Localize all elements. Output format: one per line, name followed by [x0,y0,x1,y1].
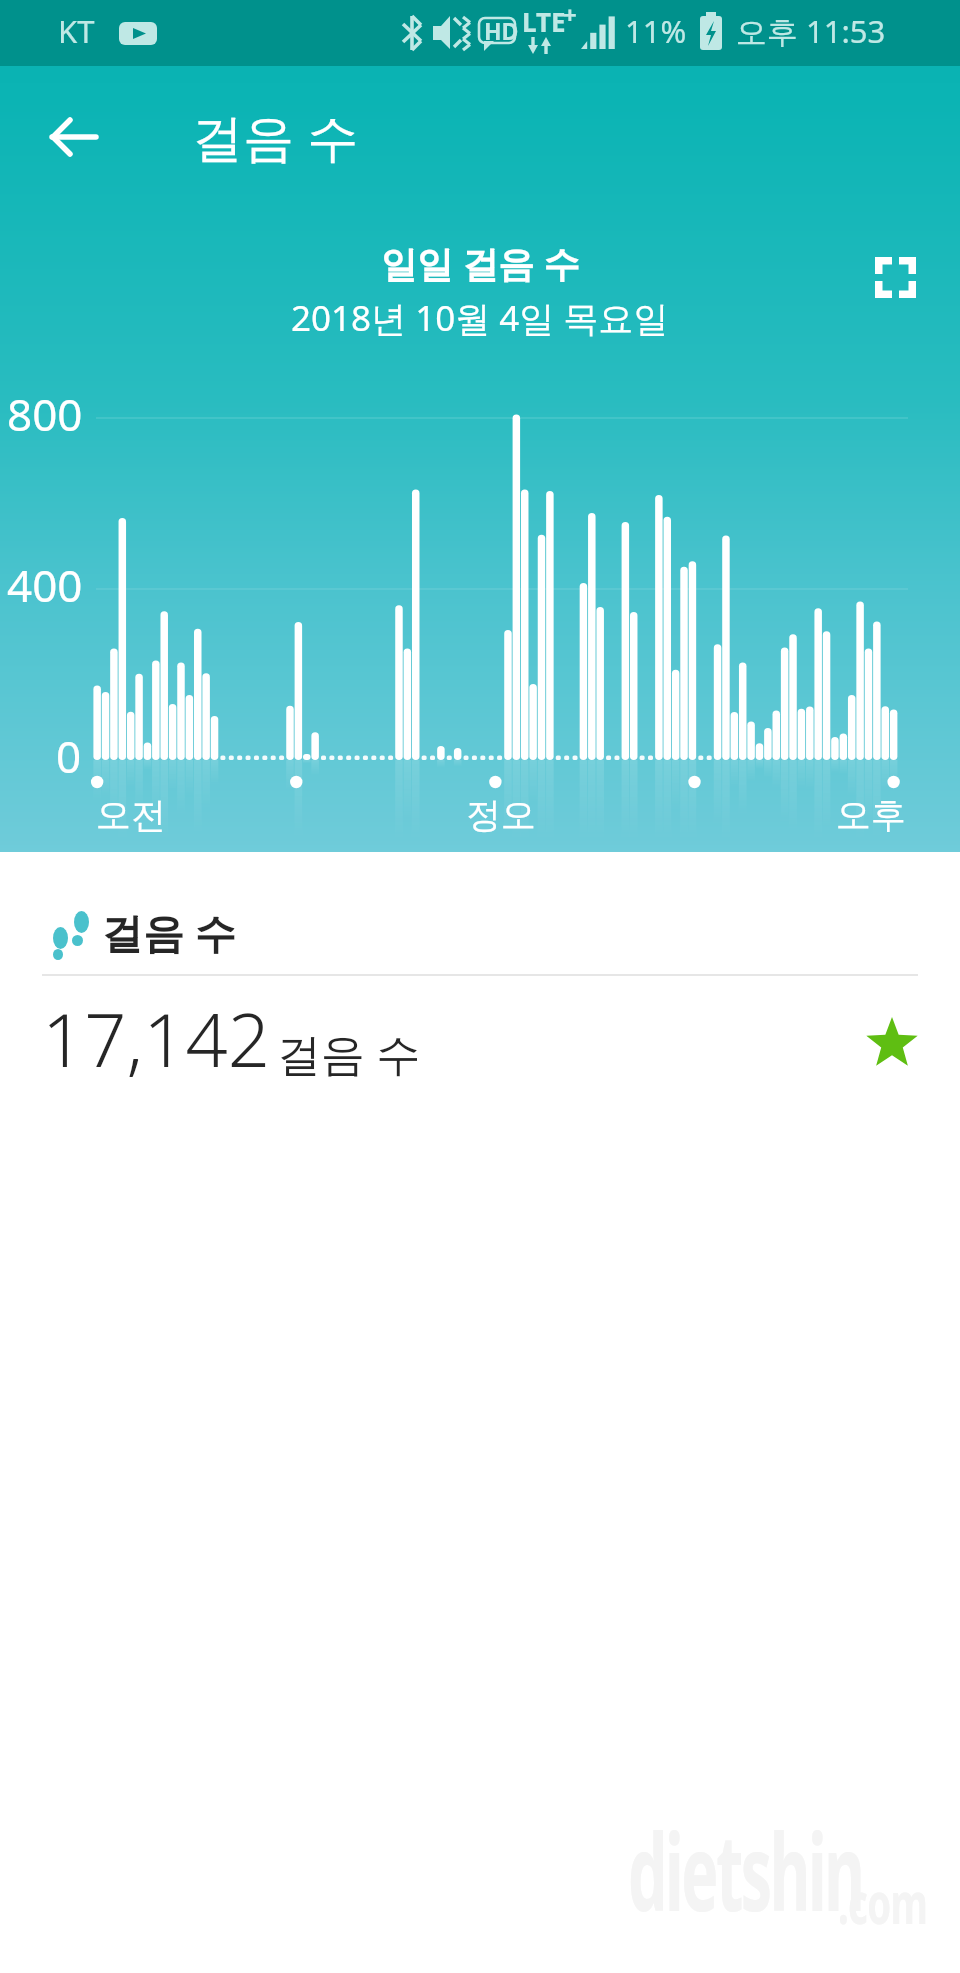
staticText: 오후 11:53 [736,10,886,52]
staticText: HD [484,15,519,46]
staticText: 걸음 수 [192,101,359,171]
staticText: 정오 [466,793,536,837]
staticText: dietshin [628,1798,863,1943]
staticText: .com [838,1862,928,1941]
staticText: 오후 [836,793,906,837]
staticText: LTE [522,4,566,39]
staticText: 걸음 수 [102,904,236,960]
button[interactable]: Fullscreen [861,243,929,311]
staticText: + [563,0,577,31]
button[interactable]: Back [25,88,123,186]
staticText: 걸음 수 [277,1023,421,1083]
staticText: 0 [56,726,82,786]
staticText: 오전 [96,793,166,837]
staticText: 11% [625,10,687,52]
staticText: 2018년 10월 4일 목요일 [291,294,669,342]
staticText: 일일 걸음 수 [381,239,580,288]
staticText: 400 [7,555,83,615]
staticText: 800 [7,384,83,444]
staticText: KT [58,10,95,52]
button[interactable]: 걸음 수 [0,852,960,1120]
button[interactable]: Favourite [856,1006,928,1078]
staticText: 17,142 [42,988,270,1089]
